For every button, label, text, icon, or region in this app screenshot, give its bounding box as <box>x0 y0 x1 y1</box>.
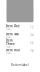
staticText: 78 <box>30 49 34 53</box>
staticText: Detail text <box>6 46 11 48</box>
button[interactable]: Item Three <box>4 39 36 47</box>
button[interactable]: Item Two <box>4 31 36 39</box>
button[interactable]: Item One <box>4 23 36 31</box>
staticText: Bottom Label <box>11 63 29 67</box>
staticText: Detail text <box>6 36 11 38</box>
staticText: 34 <box>30 33 34 37</box>
staticText: 12 <box>30 25 34 29</box>
staticText: Detail text <box>6 28 11 30</box>
staticText: 56 <box>30 41 34 45</box>
staticText: Item Three <box>6 39 15 46</box>
staticText: Item Four <box>6 48 20 52</box>
staticText: Item Two <box>6 32 19 36</box>
staticText: Detail text <box>6 52 11 54</box>
button[interactable]: Item Four <box>4 47 36 55</box>
staticText: Item One <box>6 24 20 28</box>
